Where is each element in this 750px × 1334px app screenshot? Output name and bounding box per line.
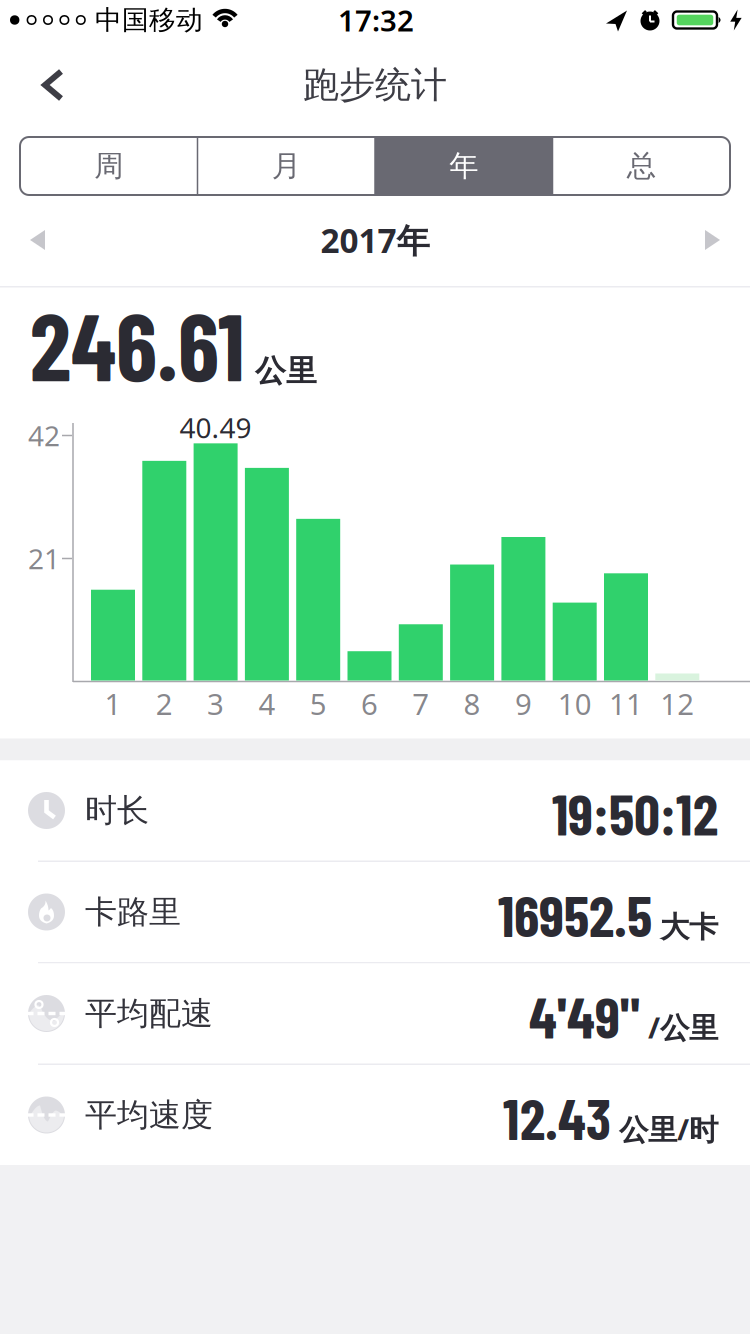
- staticText: 1: [104, 684, 121, 723]
- staticText: 大卡: [660, 909, 718, 945]
- staticText: 21: [28, 540, 60, 577]
- staticText: 卡路里: [85, 892, 181, 932]
- staticText: 4'49": [529, 981, 640, 1050]
- button[interactable]: 月: [197, 137, 375, 195]
- staticText: 中国移动: [95, 4, 203, 36]
- staticText: 2: [156, 684, 173, 723]
- staticText: 10: [558, 684, 592, 723]
- staticText: 6: [361, 684, 378, 723]
- button[interactable]: Back: [0, 48, 65, 121]
- staticText: 19:50:12: [552, 778, 718, 847]
- staticText: 12.43: [503, 1083, 611, 1151]
- staticText: 17:32: [338, 0, 414, 39]
- button[interactable]: Next year: [705, 210, 750, 270]
- staticText: 9: [515, 684, 532, 723]
- staticText: 3: [207, 684, 224, 723]
- staticText: 跑步统计: [303, 63, 447, 107]
- button[interactable]: Previous year: [0, 210, 45, 270]
- staticText: 平均速度: [85, 1095, 213, 1135]
- staticText: 12: [660, 684, 694, 723]
- staticText: 42: [28, 417, 60, 454]
- staticText: 4: [258, 684, 275, 723]
- staticText: 11: [609, 684, 643, 723]
- staticText: 7: [412, 684, 429, 723]
- staticText: 246.61: [30, 288, 245, 400]
- staticText: 公里: [255, 352, 317, 390]
- staticText: 2017年: [320, 218, 429, 262]
- staticText: 40.49: [180, 409, 252, 446]
- staticText: 周: [94, 148, 123, 184]
- staticText: 总: [627, 148, 656, 184]
- staticText: 5: [310, 684, 327, 723]
- staticText: 平均配速: [85, 994, 213, 1033]
- staticText: 年: [449, 148, 478, 184]
- button[interactable]: 周: [20, 137, 197, 195]
- staticText: 月: [272, 148, 301, 184]
- staticText: 时长: [85, 791, 149, 830]
- staticText: 公里/时: [619, 1109, 718, 1148]
- button[interactable]: 总: [552, 137, 730, 195]
- staticText: 16952.5: [498, 880, 652, 948]
- button[interactable]: 年: [375, 137, 552, 195]
- staticText: 8: [464, 684, 481, 723]
- staticText: /公里: [648, 1008, 718, 1047]
